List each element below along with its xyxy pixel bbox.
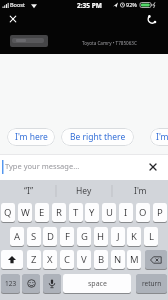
button[interactable]: F [60, 227, 74, 246]
staticText: V [81, 253, 87, 266]
button[interactable] [145, 250, 167, 269]
button[interactable]: H [94, 227, 108, 246]
staticText: Y [89, 206, 95, 219]
button[interactable] [146, 160, 160, 174]
button[interactable]: Q [1, 203, 15, 222]
button[interactable]: R [52, 203, 66, 222]
button[interactable]: E [35, 203, 49, 222]
button[interactable]: Y [85, 203, 99, 222]
button[interactable]: 123 [1, 274, 20, 293]
staticText: W [21, 206, 30, 219]
staticText: Boost [10, 1, 25, 8]
staticText: Type your message... [5, 161, 80, 171]
staticText: X [47, 253, 53, 266]
button[interactable]: C [60, 250, 74, 269]
button[interactable]: K [127, 227, 141, 246]
button[interactable]: Hey [56, 180, 112, 202]
staticText: T [73, 206, 79, 219]
button[interactable] [1, 250, 23, 269]
button[interactable]: T [69, 203, 83, 222]
staticText: P [157, 206, 163, 219]
button[interactable] [43, 274, 61, 293]
button[interactable] [22, 274, 40, 293]
staticText: O [139, 206, 147, 219]
button[interactable]: “I” [0, 180, 56, 202]
staticText: A [14, 230, 21, 243]
button[interactable]: M [127, 250, 141, 269]
staticText: 123 [5, 279, 17, 288]
staticText: S [31, 230, 37, 243]
staticText: L [149, 230, 154, 243]
button[interactable]: J [111, 227, 125, 246]
staticText: I [124, 206, 128, 219]
staticText: U [106, 206, 113, 219]
staticText: 2:35 PM [77, 1, 102, 10]
staticText: D [47, 230, 54, 243]
button[interactable] [7, 13, 19, 25]
button[interactable]: A [10, 227, 24, 246]
button[interactable] [146, 13, 160, 27]
staticText: Q [4, 206, 12, 219]
staticText: Be right there [70, 131, 126, 143]
button[interactable]: B [94, 250, 108, 269]
staticText: C [64, 253, 71, 266]
staticText: F [65, 230, 70, 243]
button[interactable]: N [111, 250, 125, 269]
button[interactable]: I'm here [7, 128, 55, 146]
button[interactable]: return [136, 274, 167, 293]
button[interactable]: space [63, 274, 131, 293]
staticText: J [117, 230, 120, 243]
button[interactable]: L [144, 227, 158, 246]
button[interactable]: Be right there [61, 128, 134, 146]
staticText: H [97, 230, 105, 243]
staticText: B [98, 253, 105, 266]
staticText: G [81, 230, 88, 243]
button[interactable]: W [18, 203, 32, 222]
button[interactable]: I'm [112, 180, 168, 202]
button[interactable]: P [153, 203, 167, 222]
staticText: E [39, 206, 45, 219]
staticText: 92% [126, 1, 137, 8]
staticText: space [88, 279, 107, 289]
button[interactable]: V [77, 250, 91, 269]
staticText: “I” [24, 185, 33, 197]
staticText: Toyota Camry • T785063C [82, 40, 137, 46]
button[interactable]: Z [27, 250, 41, 269]
button[interactable]: I [119, 203, 133, 222]
staticText: I'm [134, 185, 147, 197]
button[interactable]: I'm on my way [150, 128, 168, 146]
button[interactable]: X [43, 250, 57, 269]
button[interactable]: S [27, 227, 41, 246]
staticText: R [56, 206, 62, 219]
button[interactable]: U [102, 203, 116, 222]
staticText: Z [31, 253, 37, 266]
staticText: Hey [76, 185, 92, 197]
staticText: return [142, 279, 162, 288]
staticText: I'm on my way [156, 131, 168, 143]
staticText: I'm here [15, 131, 48, 143]
button[interactable]: O [136, 203, 150, 222]
staticText: M [130, 253, 139, 266]
button[interactable]: G [77, 227, 91, 246]
button[interactable]: D [43, 227, 57, 246]
staticText: K [131, 230, 137, 243]
staticText: N [114, 253, 122, 266]
